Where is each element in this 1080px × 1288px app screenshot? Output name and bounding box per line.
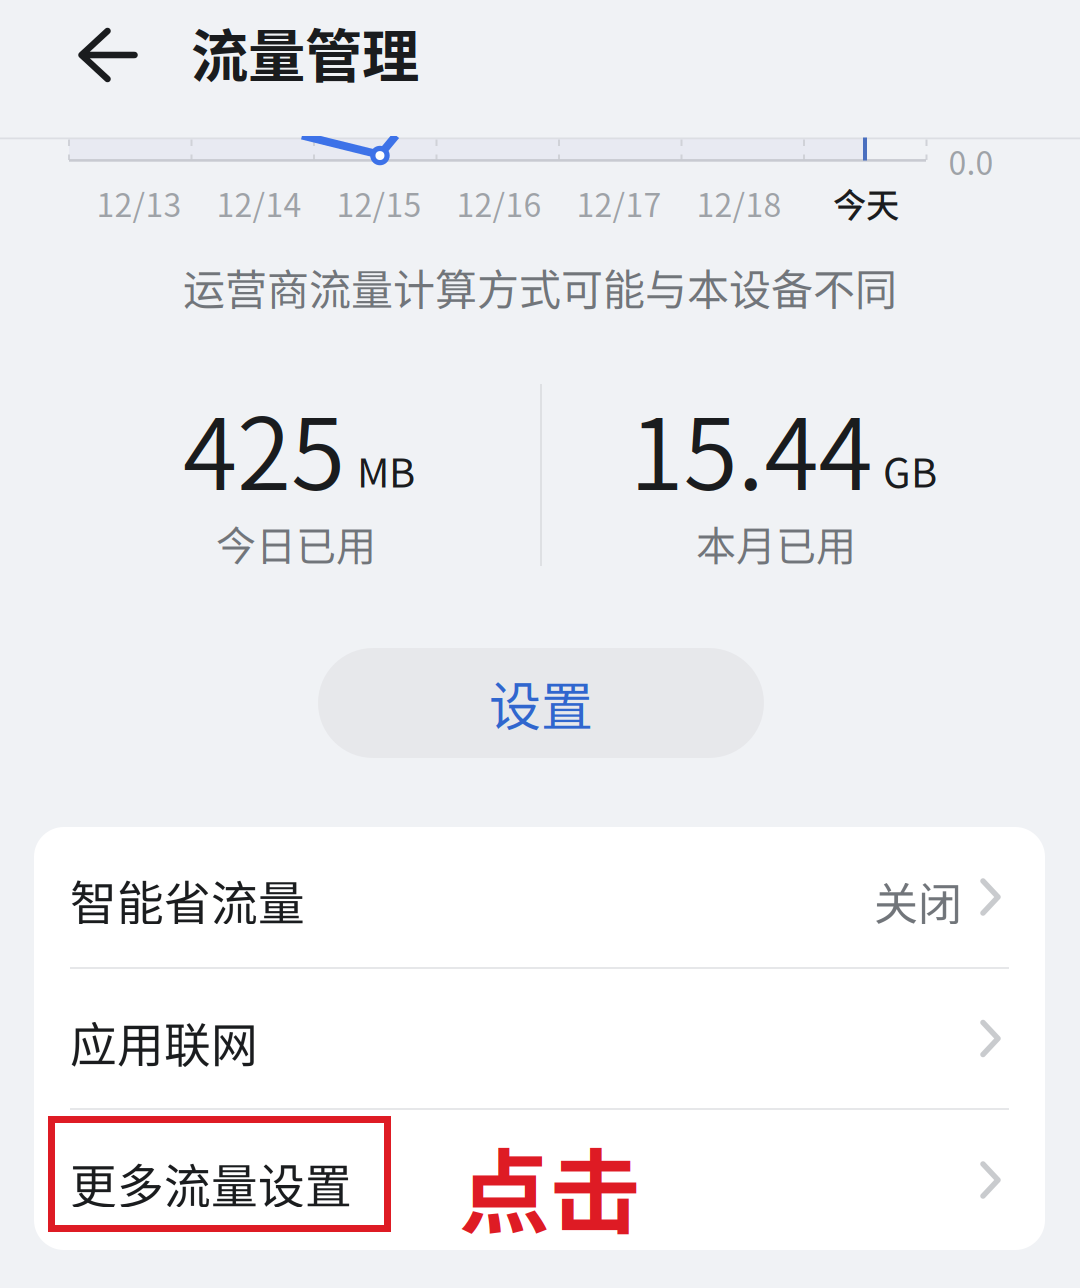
- staticText: 设置: [489, 665, 593, 741]
- staticText: GB: [883, 441, 937, 499]
- staticText: 智能省流量: [70, 866, 305, 934]
- button[interactable]: 设置: [318, 648, 764, 758]
- staticText: 12/17: [576, 180, 661, 226]
- staticText: 今天: [833, 179, 899, 227]
- staticText: 点击: [459, 1120, 641, 1252]
- staticText: 12/16: [456, 180, 541, 226]
- staticText: 15.44: [629, 376, 872, 518]
- staticText: 更多流量设置: [70, 1149, 352, 1217]
- staticText: 12/13: [96, 180, 181, 226]
- staticText: 今日已用: [216, 514, 376, 572]
- staticText: 425: [183, 376, 345, 518]
- staticText: 关闭: [874, 869, 962, 933]
- staticText: 12/14: [216, 180, 301, 226]
- staticText: 0.0: [948, 138, 993, 184]
- staticText: 运营商流量计算方式可能与本设备不同: [183, 257, 897, 317]
- staticText: 本月已用: [696, 514, 856, 572]
- button[interactable]: 返回: [50, 0, 166, 110]
- button[interactable]: 智能省流量: [34, 827, 1045, 967]
- staticText: 流量管理: [191, 10, 419, 93]
- button[interactable]: 应用联网: [34, 969, 1045, 1108]
- staticText: 12/15: [336, 180, 421, 226]
- button[interactable]: 更多流量设置: [34, 1110, 1045, 1250]
- staticText: MB: [357, 441, 415, 499]
- staticText: 应用联网: [70, 1008, 258, 1075]
- staticText: 12/18: [696, 180, 781, 226]
